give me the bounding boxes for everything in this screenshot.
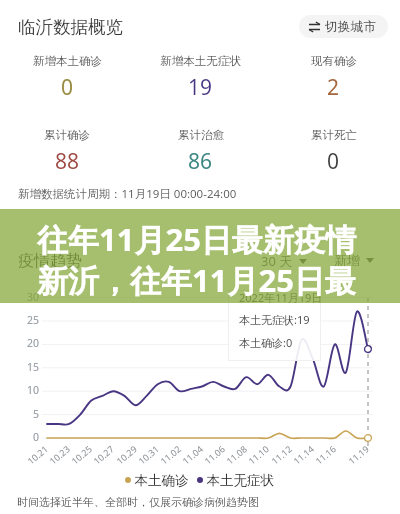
staticText: 15 [27, 360, 40, 374]
staticText: 新增 [334, 252, 360, 268]
staticText: 累计死亡 [311, 128, 357, 142]
staticText: 本土确诊 [131, 471, 189, 489]
staticText: 10.21 [25, 442, 51, 467]
staticText: 切换城市 [325, 19, 377, 35]
staticText: 86 [188, 147, 213, 176]
staticText: 0 [327, 147, 340, 176]
other: Switch city [309, 22, 320, 32]
staticText: 新沂，往年11月25日最 [37, 259, 356, 301]
staticText: 10.31 [136, 442, 162, 467]
staticText: 新增数据统计周期：11月19日 00:00-24:00 [18, 186, 237, 202]
staticText: 88 [55, 147, 80, 176]
staticText: 新增本土确诊 [33, 54, 102, 68]
staticText: 11.16 [313, 442, 339, 467]
staticText: 累计治愈 [178, 128, 224, 142]
button[interactable]: 30 天 [261, 252, 307, 270]
staticText: 疫情趋势 [18, 251, 82, 271]
staticText: 2 [327, 73, 340, 102]
staticText: 0 [61, 73, 74, 102]
staticText: 30 天 [261, 252, 293, 270]
staticText: 30 [27, 290, 40, 304]
staticText: 11.19 [346, 442, 372, 467]
staticText: 本土确诊:0 [239, 335, 293, 350]
staticText: 10.27 [91, 442, 117, 467]
staticText: 10.25 [69, 442, 95, 467]
staticText: 19 [188, 73, 213, 102]
staticText: 10.23 [47, 442, 73, 467]
staticText: 20 [27, 336, 40, 350]
staticText: 11.04 [180, 442, 206, 467]
staticText: 10.29 [114, 442, 140, 467]
staticText: 现有确诊 [311, 54, 357, 68]
staticText: 0 [33, 430, 40, 444]
staticText: 临沂数据概览 [18, 16, 123, 38]
staticText: 11.08 [224, 442, 250, 467]
button[interactable]: 新增 [334, 252, 374, 268]
staticText: 本土无症状:19 [239, 312, 310, 327]
staticText: 11.14 [291, 442, 317, 467]
staticText: 11.06 [202, 442, 228, 467]
staticText: 本土无症状 [203, 471, 275, 489]
staticText: 累计确诊 [44, 128, 90, 142]
staticText: 11.02 [158, 442, 184, 467]
staticText: 5 [33, 407, 40, 421]
staticText: 新增本土无症状 [160, 54, 241, 68]
staticText: 25 [27, 313, 40, 327]
staticText: 往年11月25日最新疫情 [37, 218, 356, 260]
button[interactable]: Switch city [299, 15, 388, 38]
staticText: 时间选择近半年、全部时，仅展示确诊病例趋势图 [17, 495, 259, 509]
staticText: 10 [27, 383, 40, 397]
staticText: 11.12 [269, 442, 295, 467]
staticText: 2022年11月19日 [239, 290, 323, 305]
staticText: 11.10 [246, 442, 272, 467]
